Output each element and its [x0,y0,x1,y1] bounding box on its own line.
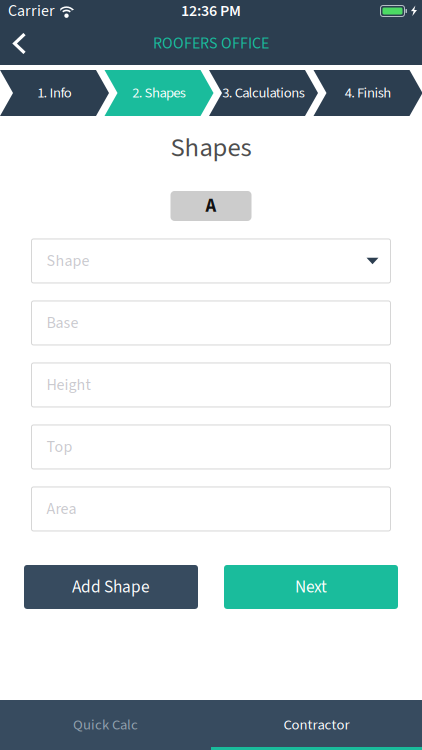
button[interactable]: Back [0,22,40,65]
staticText: Next [295,575,327,599]
staticText: ROOFERS OFFICE [153,32,269,55]
staticText: Shapes [170,129,251,167]
button[interactable]: Add Shape [24,565,198,609]
staticText: 4. Finish [345,83,391,103]
staticText: Height [46,374,90,396]
staticText: A [205,193,216,219]
staticText: Contractor [283,715,349,735]
staticText: 1. Info [37,83,72,103]
staticText: 3. Calculations [222,83,305,103]
staticText: 12:36 PM [181,0,241,22]
button[interactable]: Next [224,565,398,609]
staticText: Area [46,498,76,520]
button[interactable]: 2. Shapes [104,70,213,116]
staticText: Add Shape [72,575,150,599]
staticText: Shape [46,250,89,272]
staticText: Carrier [8,0,55,22]
button[interactable]: A [170,191,251,221]
staticText: Top [46,436,72,458]
button[interactable]: Contractor [211,700,422,750]
button[interactable]: 1. Info [0,70,109,116]
button[interactable]: 4. Finish [313,70,422,116]
button[interactable]: 3. Calculations [209,70,318,116]
button[interactable]: Quick Calc [0,700,211,750]
staticText: 2. Shapes [132,83,186,103]
staticText: Base [46,312,78,334]
staticText: Quick Calc [73,715,138,735]
